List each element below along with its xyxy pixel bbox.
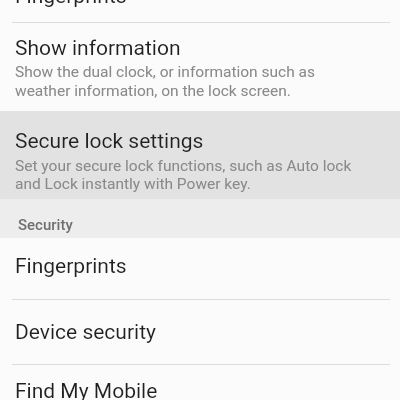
- staticText: and Lock instantly with Power key.: [15, 175, 251, 193]
- staticText: Find My Mobile: [15, 379, 158, 400]
- button[interactable]: Fingerprints: [0, 238, 400, 299]
- staticText: Show the dual clock, or information such…: [15, 63, 315, 81]
- staticText: Device security: [15, 320, 156, 345]
- staticText: weather information, on the lock screen.: [15, 82, 291, 100]
- button[interactable]: Device security: [0, 300, 400, 364]
- staticText: Secure lock settings: [15, 129, 204, 154]
- button[interactable]: Find My Mobile: [0, 365, 400, 400]
- staticText: Security: [18, 216, 73, 234]
- button[interactable]: Show information: [0, 23, 400, 111]
- staticText: Show information: [15, 36, 181, 61]
- staticText: Fingerprints: [15, 254, 127, 279]
- staticText: Set your secure lock functions, such as …: [15, 157, 352, 175]
- button[interactable]: Secure lock settings: [0, 111, 400, 199]
- staticText: Fingerprints: [15, 0, 127, 9]
